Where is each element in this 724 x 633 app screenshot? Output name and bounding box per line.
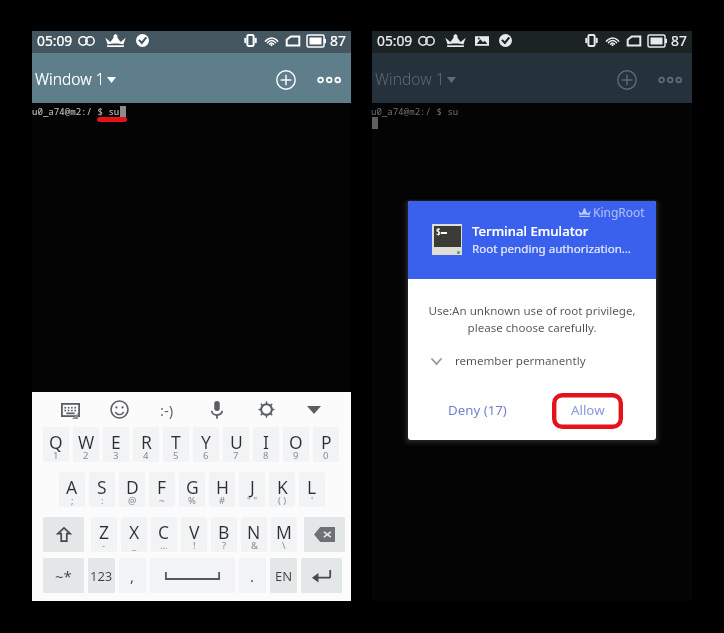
button[interactable]: EN xyxy=(270,558,297,593)
staticText: ~ xyxy=(159,494,165,507)
staticText: 9 xyxy=(293,449,299,462)
staticText: 8 xyxy=(263,449,269,462)
staticText: Window 1 xyxy=(35,68,105,89)
staticText: Y xyxy=(201,430,211,454)
button[interactable]: N xyxy=(241,517,267,552)
button[interactable]: Enter xyxy=(301,558,342,593)
staticText: U xyxy=(230,430,243,454)
button[interactable]: Space xyxy=(150,558,235,593)
staticText: 87 xyxy=(330,31,346,50)
staticText: X xyxy=(129,520,140,544)
staticText: A xyxy=(66,475,78,499)
button[interactable]: P xyxy=(313,427,339,462)
button[interactable]: Backspace xyxy=(304,517,345,552)
button[interactable]: V xyxy=(181,517,207,552)
staticText: 05:09 xyxy=(377,31,413,50)
button[interactable]: Z xyxy=(91,517,117,552)
button[interactable]: Keyboard tool xyxy=(250,392,282,427)
staticText: " " xyxy=(247,494,258,507)
staticText: 87 xyxy=(671,31,687,50)
staticText: 1 xyxy=(53,449,59,462)
button[interactable]: A xyxy=(59,472,85,507)
button[interactable]: More options xyxy=(315,67,341,93)
staticText: , xyxy=(130,566,135,586)
staticText: KingRoot xyxy=(593,204,645,220)
staticText: remember permanently xyxy=(455,353,586,369)
staticText: % xyxy=(188,494,196,507)
button[interactable]: F xyxy=(149,472,175,507)
staticText: F xyxy=(157,475,167,499)
staticText: I xyxy=(263,430,269,454)
button[interactable]: Keyboard tool xyxy=(103,392,135,427)
staticText: ( ) xyxy=(278,494,287,507)
button[interactable]: K xyxy=(269,472,295,507)
staticText: 6 xyxy=(203,449,209,462)
staticText: Root pending authorization… xyxy=(472,241,631,257)
staticText: ... xyxy=(160,539,168,552)
button[interactable]: W xyxy=(73,427,99,462)
staticText: . xyxy=(250,566,255,586)
button[interactable]: S xyxy=(89,472,115,507)
staticText: D xyxy=(126,475,139,499)
button[interactable]: M xyxy=(271,517,297,552)
button[interactable]: 123 xyxy=(88,558,115,593)
staticText: 123 xyxy=(90,567,113,585)
button[interactable]: New window xyxy=(271,65,301,95)
button[interactable]: L xyxy=(299,472,325,507)
staticText: M xyxy=(276,520,292,544)
staticText: & xyxy=(251,539,258,552)
button[interactable]: More options xyxy=(656,67,682,93)
button[interactable]: , xyxy=(119,558,146,593)
staticText: Deny (17) xyxy=(448,401,507,419)
staticText: 0 xyxy=(323,449,329,462)
staticText: T xyxy=(171,430,181,454)
button[interactable]: O xyxy=(283,427,309,462)
button[interactable]: D xyxy=(119,472,145,507)
button[interactable]: U xyxy=(223,427,249,462)
staticText: ! xyxy=(193,539,196,552)
button[interactable]: J xyxy=(239,472,265,507)
button[interactable]: remember permanently xyxy=(427,349,590,373)
button[interactable]: ~* xyxy=(43,558,84,593)
button[interactable]: Keyboard tool xyxy=(151,392,183,427)
staticText: u0_a74@m2:/ $ su xyxy=(32,105,120,117)
staticText: J xyxy=(250,475,255,499)
button[interactable]: . xyxy=(239,558,266,593)
button[interactable]: E xyxy=(103,427,129,462)
staticText: ' xyxy=(311,494,314,507)
staticText: Q xyxy=(49,430,63,454)
button[interactable]: New window xyxy=(612,65,642,95)
button[interactable]: Window 1 xyxy=(33,63,118,94)
staticText: Window 1 xyxy=(375,68,445,89)
button[interactable]: C xyxy=(151,517,177,552)
staticText: $ xyxy=(436,226,441,237)
staticText: :-) xyxy=(160,400,174,420)
staticText: H xyxy=(216,475,229,499)
button[interactable]: I xyxy=(253,427,279,462)
staticText: C xyxy=(158,520,170,544)
button[interactable]: Deny (17) xyxy=(441,397,513,422)
button[interactable]: B xyxy=(211,517,237,552)
staticText: EN xyxy=(275,567,293,585)
button[interactable]: Keyboard tool xyxy=(54,392,86,427)
button[interactable]: Window 1 xyxy=(373,63,458,94)
button[interactable]: Keyboard tool xyxy=(201,392,233,427)
staticText: @ xyxy=(128,494,137,507)
staticText: # xyxy=(219,494,226,507)
button[interactable]: Q xyxy=(43,427,69,462)
button[interactable]: Shift xyxy=(43,517,84,552)
staticText: - xyxy=(102,539,106,552)
staticText: please choose carefully. xyxy=(408,320,656,336)
staticText: 3 xyxy=(113,449,119,462)
button[interactable]: T xyxy=(163,427,189,462)
button[interactable]: Y xyxy=(193,427,219,462)
button[interactable]: Allow xyxy=(553,397,623,422)
staticText: \ xyxy=(282,539,286,552)
button[interactable]: R xyxy=(133,427,159,462)
button[interactable]: G xyxy=(179,472,205,507)
button[interactable]: H xyxy=(209,472,235,507)
staticText: Use:An unknown use of root privilege, xyxy=(408,303,656,319)
button[interactable]: X xyxy=(121,517,147,552)
button[interactable]: Keyboard tool xyxy=(298,392,330,427)
staticText: 4 xyxy=(143,449,149,462)
